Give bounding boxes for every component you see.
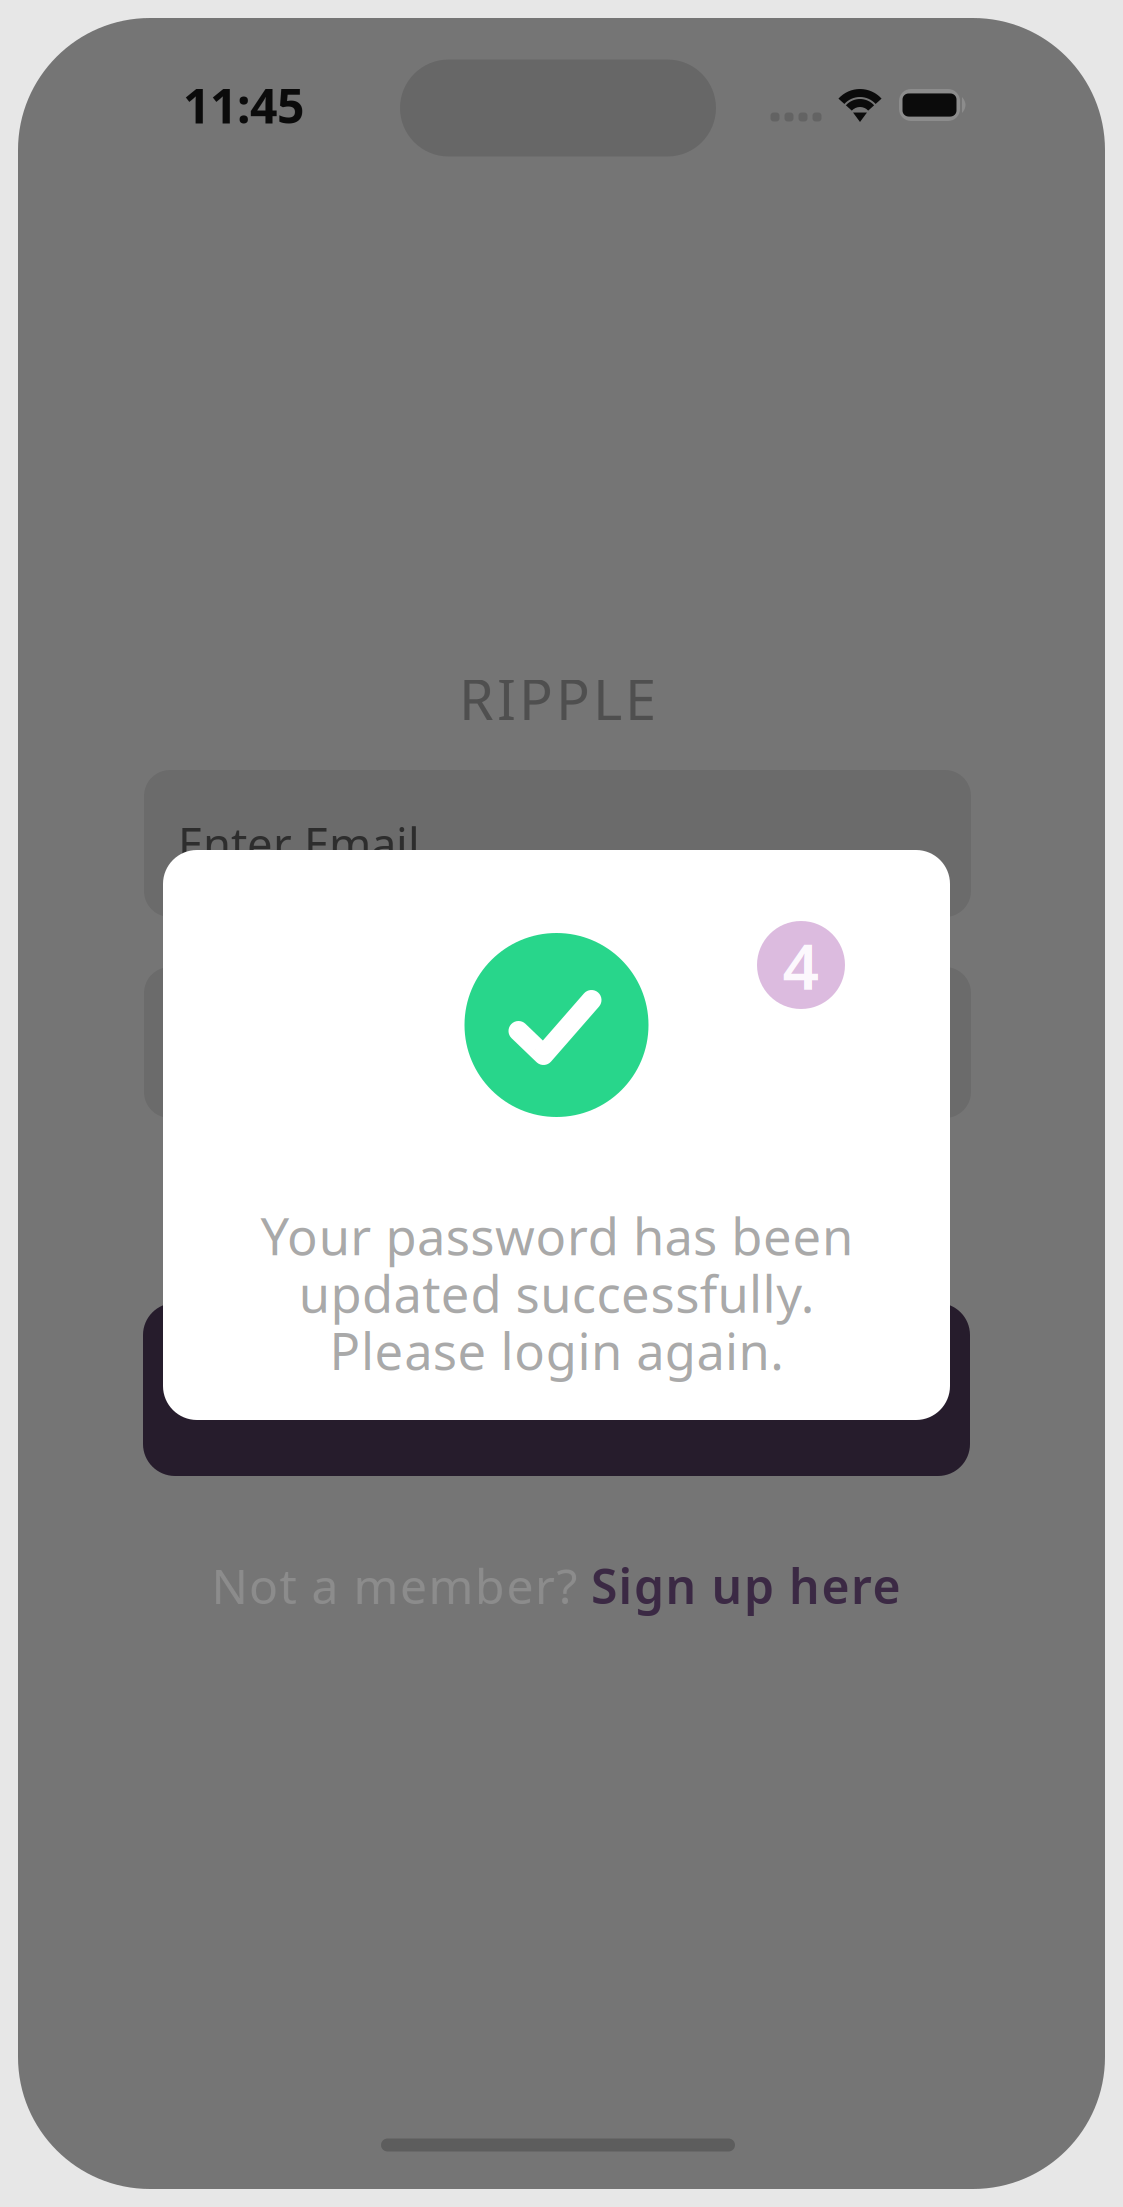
staticText: 11:45 [183, 73, 304, 137]
staticText: Sign up here [591, 1554, 900, 1617]
staticText: Your password has been updated successfu… [260, 1202, 853, 1384]
staticText: RIPPLE [459, 661, 656, 736]
staticText: Not a member? [211, 1554, 591, 1617]
staticText: Enter Email [178, 813, 420, 874]
button[interactable]: Password [144, 967, 971, 1118]
staticText: 4 [782, 922, 819, 1007]
button[interactable]: LOGIN [143, 1303, 970, 1476]
button[interactable]: Not a member? [206, 1553, 906, 1617]
staticText: LOGIN [475, 1359, 637, 1420]
button[interactable]: Enter Email [144, 770, 971, 917]
